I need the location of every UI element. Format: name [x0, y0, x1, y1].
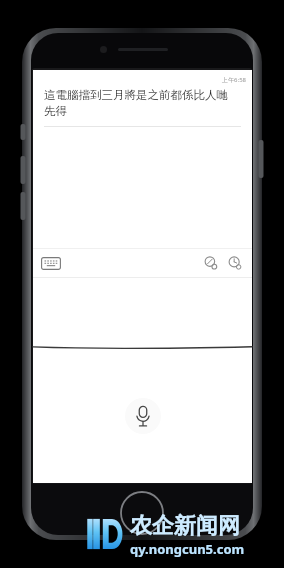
button[interactable]: Keyboard: [41, 257, 61, 270]
button[interactable]: Attach: [202, 254, 220, 272]
button[interactable]: History: [226, 254, 244, 272]
other: Home: [120, 491, 164, 535]
staticText: 上午6:58: [222, 76, 246, 84]
staticText: 這電腦擋到三月將是之前都係比人哋先得: [44, 88, 239, 118]
staticText: qy.nongcun5.com: [130, 540, 245, 558]
staticText: 农企新闻网: [130, 512, 240, 540]
button[interactable]: Microphone: [125, 398, 161, 434]
